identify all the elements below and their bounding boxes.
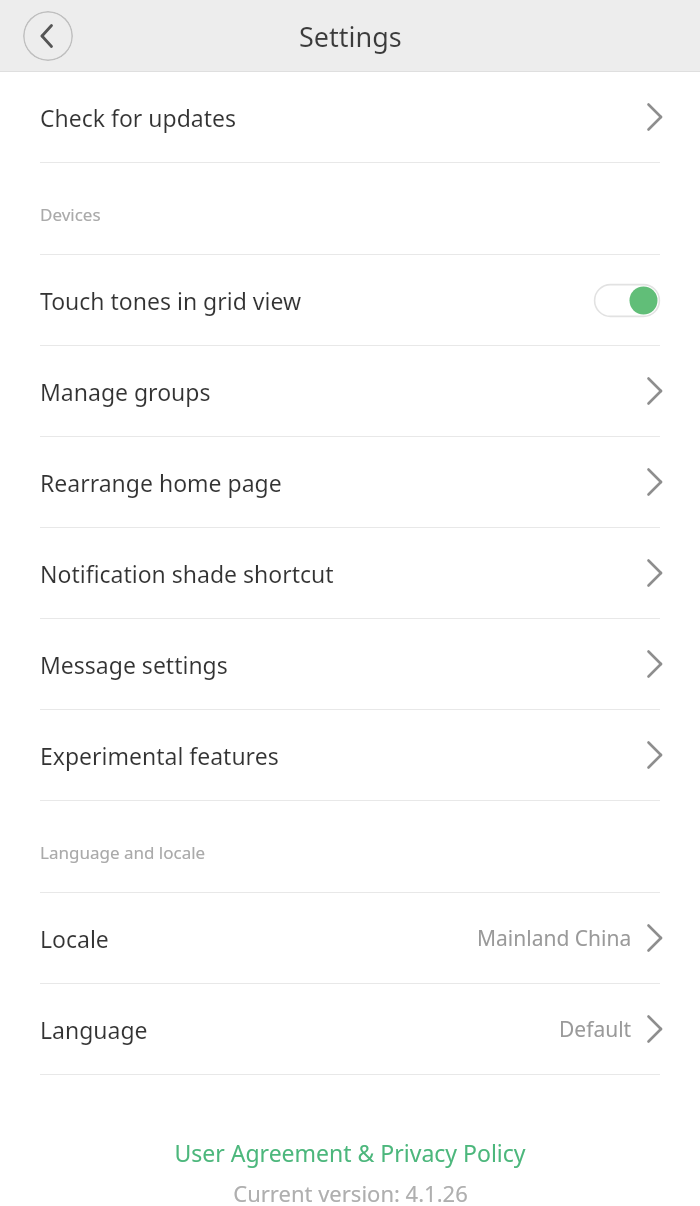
button[interactable]: Manage groups: [0, 346, 700, 436]
staticText: Notification shade shortcut: [40, 558, 334, 589]
staticText: Default: [559, 1015, 632, 1044]
staticText: Experimental features: [40, 740, 279, 771]
button[interactable]: User Agreement & Privacy Policy: [164, 1135, 536, 1170]
button[interactable]: Touch tones in grid view toggle: [594, 284, 660, 317]
button[interactable]: Touch tones in grid view: [0, 255, 700, 345]
button[interactable]: Notification shade shortcut: [0, 528, 700, 618]
staticText: Rearrange home page: [40, 467, 282, 498]
staticText: Devices: [40, 203, 101, 226]
staticText: Locale: [40, 923, 109, 954]
staticText: Message settings: [40, 649, 228, 680]
staticText: Touch tones in grid view: [40, 285, 301, 316]
staticText: Mainland China: [477, 924, 632, 953]
button[interactable]: Locale: [0, 893, 700, 983]
staticText: Language and locale: [40, 841, 206, 864]
staticText: Language: [40, 1014, 148, 1045]
staticText: Check for updates: [40, 102, 237, 133]
button[interactable]: Back: [23, 11, 73, 61]
button[interactable]: Language: [0, 984, 700, 1074]
button[interactable]: Message settings: [0, 619, 700, 709]
staticText: Manage groups: [40, 376, 211, 407]
button[interactable]: Rearrange home page: [0, 437, 700, 527]
staticText: Settings: [299, 18, 402, 55]
staticText: Current version: 4.1.26: [233, 1178, 468, 1206]
button[interactable]: Check for updates: [0, 72, 700, 162]
button[interactable]: Experimental features: [0, 710, 700, 800]
